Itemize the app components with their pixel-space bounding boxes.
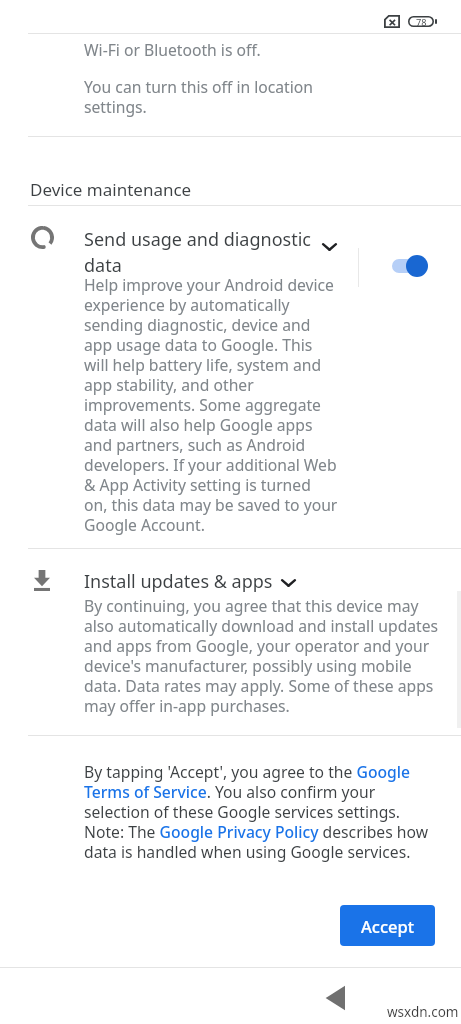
staticText: By continuing, you agree that this devic… — [84, 597, 440, 717]
button[interactable]: Back — [312, 974, 360, 1022]
button[interactable]: Accept — [340, 905, 435, 946]
staticText: Device maintenance — [30, 178, 192, 201]
staticText: Help improve your Android device experie… — [84, 276, 338, 536]
staticText: You can turn this off in location settin… — [84, 78, 337, 118]
staticText: Wi-Fi or Bluetooth is off. — [84, 41, 261, 61]
staticText: By tapping 'Accept', you agree to the Go… — [84, 763, 434, 863]
button[interactable]: Send usage and diagnostic data toggle — [392, 254, 430, 278]
button[interactable]: Expand send usage and diagnostic data — [315, 232, 343, 260]
staticText: wsxdn.com — [387, 1003, 459, 1021]
staticText: Install updates & apps — [84, 568, 273, 594]
staticText: 78 — [416, 16, 427, 27]
staticText: Send usage and diagnostic data — [84, 226, 324, 278]
staticText: Accept — [361, 915, 415, 937]
button[interactable]: Expand install updates and apps — [274, 568, 302, 596]
